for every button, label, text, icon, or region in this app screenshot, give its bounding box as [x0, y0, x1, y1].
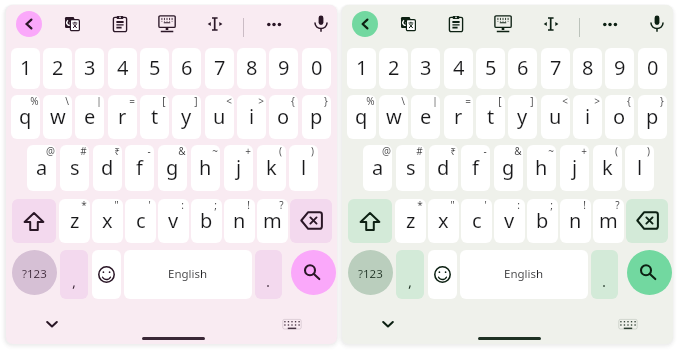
button[interactable]: v [158, 199, 189, 243]
button[interactable]: a [363, 145, 392, 191]
button[interactable]: z [395, 199, 426, 243]
button[interactable]: . [591, 250, 618, 299]
button[interactable]: Translate [58, 12, 82, 36]
button[interactable]: c [125, 199, 156, 243]
button[interactable]: f [125, 145, 154, 191]
button[interactable]: 4 [444, 48, 473, 89]
button[interactable]: ?123 [12, 250, 57, 295]
button[interactable]: k [257, 145, 286, 191]
button[interactable]: s [60, 145, 89, 191]
button[interactable]: w [379, 95, 408, 139]
button[interactable]: Hide keyboard [377, 313, 399, 335]
button[interactable]: w [43, 95, 72, 139]
button[interactable]: m [593, 199, 624, 243]
button[interactable]: , [396, 250, 424, 299]
button[interactable]: m [257, 199, 288, 243]
button[interactable]: 8 [573, 48, 602, 89]
button[interactable]: u [541, 95, 570, 139]
button[interactable]: n [560, 199, 591, 243]
button[interactable]: 9 [269, 48, 298, 89]
button[interactable]: v [494, 199, 525, 243]
button[interactable]: t [476, 95, 505, 139]
button[interactable]: Search [627, 250, 672, 295]
button[interactable]: b [191, 199, 222, 243]
button[interactable]: Shift [348, 199, 392, 243]
button[interactable]: English [124, 250, 252, 299]
button[interactable]: Search [291, 250, 336, 295]
button[interactable]: 6 [172, 48, 201, 89]
button[interactable]: p [638, 95, 667, 139]
button[interactable]: More options [262, 12, 286, 36]
button[interactable]: k [593, 145, 622, 191]
button[interactable]: Clipboard [108, 12, 132, 36]
button[interactable]: 6 [508, 48, 537, 89]
button[interactable]: Text editing cursor [203, 12, 227, 36]
button[interactable]: h [191, 145, 220, 191]
button[interactable]: 2 [43, 48, 72, 89]
button[interactable]: x [92, 199, 123, 243]
button[interactable]: o [269, 95, 298, 139]
button[interactable]: g [494, 145, 523, 191]
button[interactable]: l [289, 145, 318, 191]
button[interactable]: p [302, 95, 331, 139]
button[interactable]: 0 [638, 48, 667, 89]
button[interactable]: Switch input method [281, 313, 303, 335]
button[interactable]: Shift [12, 199, 56, 243]
button[interactable]: b [527, 199, 558, 243]
button[interactable]: More options [598, 12, 622, 36]
button[interactable]: l [625, 145, 654, 191]
button[interactable]: . [255, 250, 282, 299]
button[interactable]: q [11, 95, 40, 139]
button[interactable]: e [75, 95, 104, 139]
button[interactable]: Hide keyboard [41, 313, 63, 335]
button[interactable]: One handed mode [155, 12, 179, 36]
button[interactable]: 9 [605, 48, 634, 89]
button[interactable]: y [508, 95, 537, 139]
button[interactable]: c [461, 199, 492, 243]
button[interactable]: u [205, 95, 234, 139]
button[interactable]: 2 [379, 48, 408, 89]
button[interactable]: 3 [411, 48, 440, 89]
button[interactable]: 7 [541, 48, 570, 89]
button[interactable]: e [411, 95, 440, 139]
button[interactable]: Voice input [645, 12, 669, 36]
button[interactable]: 5 [140, 48, 169, 89]
button[interactable]: d [429, 145, 458, 191]
button[interactable]: Emoji [92, 250, 121, 299]
button[interactable]: j [224, 145, 253, 191]
button[interactable]: Back [16, 11, 42, 37]
button[interactable]: n [224, 199, 255, 243]
button[interactable]: r [108, 95, 137, 139]
button[interactable]: Text editing cursor [539, 12, 563, 36]
button[interactable]: Backspace [626, 199, 668, 243]
button[interactable]: i [237, 95, 266, 139]
button[interactable]: Emoji [428, 250, 457, 299]
button[interactable]: g [158, 145, 187, 191]
button[interactable]: h [527, 145, 556, 191]
button[interactable]: x [428, 199, 459, 243]
button[interactable]: Voice input [309, 12, 333, 36]
button[interactable]: Translate [394, 12, 418, 36]
button[interactable]: d [93, 145, 122, 191]
button[interactable]: s [396, 145, 425, 191]
button[interactable]: 1 [347, 48, 376, 89]
button[interactable]: 7 [205, 48, 234, 89]
button[interactable]: 0 [302, 48, 331, 89]
button[interactable]: 1 [11, 48, 40, 89]
button[interactable]: Backspace [290, 199, 332, 243]
button[interactable]: f [461, 145, 490, 191]
button[interactable]: English [460, 250, 588, 299]
button[interactable]: 3 [75, 48, 104, 89]
button[interactable]: y [172, 95, 201, 139]
button[interactable]: 8 [237, 48, 266, 89]
button[interactable]: q [347, 95, 376, 139]
button[interactable]: ?123 [348, 250, 393, 295]
button[interactable]: , [60, 250, 88, 299]
button[interactable]: i [573, 95, 602, 139]
button[interactable]: 5 [476, 48, 505, 89]
button[interactable]: Back [352, 11, 378, 37]
button[interactable]: Clipboard [444, 12, 468, 36]
button[interactable]: r [444, 95, 473, 139]
button[interactable]: z [59, 199, 90, 243]
button[interactable]: t [140, 95, 169, 139]
